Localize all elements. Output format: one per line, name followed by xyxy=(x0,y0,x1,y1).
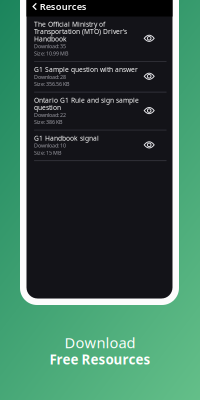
button[interactable]: G1 Handbook signal xyxy=(26,130,172,161)
staticText: Download: 35 xyxy=(34,43,66,50)
staticText: Download: 10 xyxy=(34,142,66,149)
staticText: G1 Sample question with answer xyxy=(34,65,138,74)
staticText: The Official Ministry of Transportation … xyxy=(34,20,127,43)
staticText: Download: 28 xyxy=(34,73,66,80)
button[interactable]: Ontario G1 Rule and sign sample question xyxy=(26,92,172,130)
staticText: Size: 386 KB xyxy=(34,118,62,125)
staticText: Download: 22 xyxy=(34,111,66,118)
staticText: Size: 15 MB xyxy=(34,149,61,156)
staticText: Download xyxy=(64,333,135,352)
button[interactable]: G1 Sample question with answer xyxy=(26,62,172,92)
staticText: Resources xyxy=(40,0,87,13)
staticText: Size: 10.99 MB xyxy=(34,50,68,57)
staticText: Free Resources xyxy=(49,350,150,368)
staticText: G1 Handbook signal xyxy=(34,134,99,142)
staticText: Size: 356.56 KB xyxy=(34,80,69,88)
button[interactable]: The Official Ministry of Transportation … xyxy=(26,16,172,62)
button[interactable]: Back xyxy=(30,0,40,13)
staticText: Ontario G1 Rule and sign sample question xyxy=(34,96,139,112)
